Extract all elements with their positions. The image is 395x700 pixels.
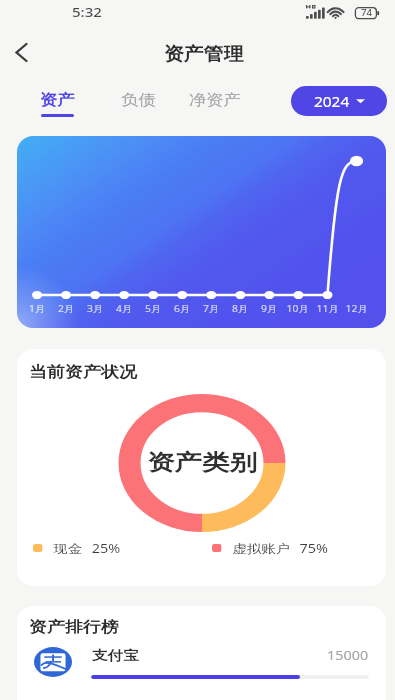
staticText: 6月 [174,302,191,314]
staticText: 5月 [145,302,162,314]
staticText: 5:32 [72,4,102,21]
staticText: 支付宝 [92,647,139,663]
staticText: 9月 [261,302,278,314]
staticText: 2月 [58,302,75,314]
button[interactable]: 现金 [33,540,121,556]
button[interactable]: 净资产 [189,86,240,118]
staticText: 当前资产状况 [29,363,137,382]
button[interactable]: 资产 [40,86,74,118]
staticText: 75% [300,540,328,556]
staticText: 净资产 [189,91,241,110]
staticText: 3月 [87,302,104,314]
button[interactable]: Back [1,32,41,72]
staticText: 资产类别 [147,449,257,477]
staticText: 资产排行榜 [29,618,119,637]
staticText: 4月 [116,302,133,314]
staticText: 11月 [316,302,339,314]
staticText: 虚拟账户 [232,541,290,556]
staticText: 8月 [232,302,249,314]
staticText: 现金 [53,541,82,556]
staticText: 10月 [286,302,309,314]
button[interactable]: 虚拟账户 [212,540,328,556]
staticText: 资产管理 [164,43,243,66]
staticText: 1月 [29,302,46,314]
staticText: 7月 [203,302,220,314]
button[interactable]: 支付宝 [17,641,386,689]
button[interactable]: 1月 [17,136,386,328]
staticText: 25% [92,540,121,556]
staticText: 74 [361,7,373,18]
button[interactable]: 负债 [121,86,155,118]
button[interactable]: 2024 [291,86,387,116]
staticText: 12月 [345,302,368,314]
staticText: 15000 [327,647,369,663]
staticText: 负债 [121,91,155,110]
staticText: 资产 [40,91,74,110]
staticText: 2024 [314,92,350,111]
